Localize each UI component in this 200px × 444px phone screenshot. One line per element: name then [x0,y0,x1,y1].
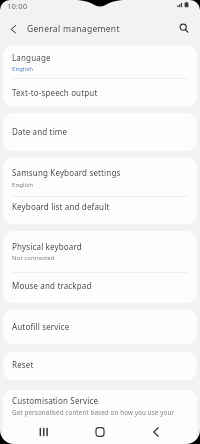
staticText: Physical keyboard [12,241,82,252]
button[interactable]: Physical keyboard [3,231,197,272]
button[interactable] [16,419,72,444]
button[interactable] [0,15,24,45]
button[interactable] [128,419,184,444]
staticText: Keyboard list and default [12,201,110,212]
staticText: Not connected [12,254,55,262]
button[interactable]: Language [3,45,197,78]
button[interactable]: Date and time [3,113,197,151]
staticText: Date and time [12,126,68,137]
staticText: General management [27,23,120,35]
button[interactable]: Keyboard list and default [3,197,197,224]
button[interactable] [72,419,128,444]
staticText: Customisation Service [12,395,99,406]
staticText: English [12,181,34,189]
staticText: Mouse and trackpad [12,280,92,291]
button[interactable]: Text-to-speech output [3,79,197,107]
button[interactable]: Customisation Service [3,390,197,417]
staticText: Get personalised content based on how yo… [12,408,175,417]
button[interactable]: Autofill service [3,309,197,344]
button[interactable]: Mouse and trackpad [3,273,197,303]
staticText: Autofill service [12,321,70,332]
staticText: 10:00 [7,1,28,11]
staticText: Language [12,52,51,63]
button[interactable]: Reset [3,352,197,380]
staticText: Samsung Keyboard settings [12,167,121,178]
button[interactable]: Samsung Keyboard settings [3,157,197,196]
staticText: Text-to-speech output [12,87,98,98]
button[interactable] [174,15,200,45]
staticText: English [12,65,34,73]
staticText: Reset [12,359,34,370]
